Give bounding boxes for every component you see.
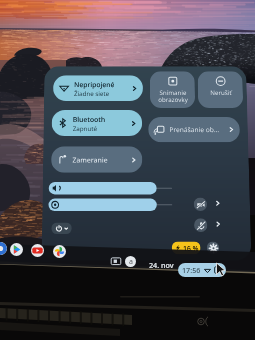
button[interactable]: 17:56 [178, 263, 226, 277]
button[interactable]: Nepripojené [53, 75, 143, 101]
button[interactable]: App0 [0, 242, 7, 255]
staticText: Nepripojené [74, 80, 115, 89]
button[interactable]: App2 [31, 244, 44, 257]
button[interactable]: App3 [53, 245, 66, 258]
button[interactable]: Snímanie obrazovky [150, 71, 195, 108]
staticText: Snímanie obrazovky [158, 88, 188, 103]
staticText: Prenášanie ob… [169, 125, 220, 134]
staticText: Žiadne siete [74, 89, 110, 97]
button[interactable]: Nerušiť [198, 71, 243, 108]
staticText: a [129, 257, 133, 267]
staticText: 17:56 [182, 265, 201, 275]
button[interactable]: Camera off [194, 197, 207, 211]
button[interactable]: Mic off options [214, 220, 223, 229]
staticText: Zapnuté [73, 124, 98, 132]
button[interactable]: App1 [10, 243, 23, 256]
staticText: 16 % [183, 244, 199, 253]
button[interactable]: Power [51, 222, 72, 234]
button[interactable]: Volume [49, 182, 172, 194]
button[interactable]: Prenášanie ob… [148, 117, 240, 142]
button[interactable]: Camera off options [214, 200, 222, 208]
button[interactable]: 24. nov [149, 260, 174, 270]
staticText: Zameranie [72, 155, 108, 165]
button[interactable]: Mic off [194, 218, 207, 232]
button[interactable]: Bluetooth [51, 110, 142, 136]
staticText: Bluetooth [73, 115, 106, 124]
button[interactable]: Zameranie [51, 146, 142, 173]
staticText: 24. nov [149, 260, 174, 270]
button[interactable]: Settings [207, 241, 219, 254]
button[interactable]: Assistant [125, 256, 136, 267]
button[interactable]: Recents [110, 255, 122, 267]
button[interactable]: Brightness [48, 199, 172, 211]
staticText: Nerušiť [210, 88, 232, 96]
button[interactable]: 16 % [172, 241, 201, 254]
